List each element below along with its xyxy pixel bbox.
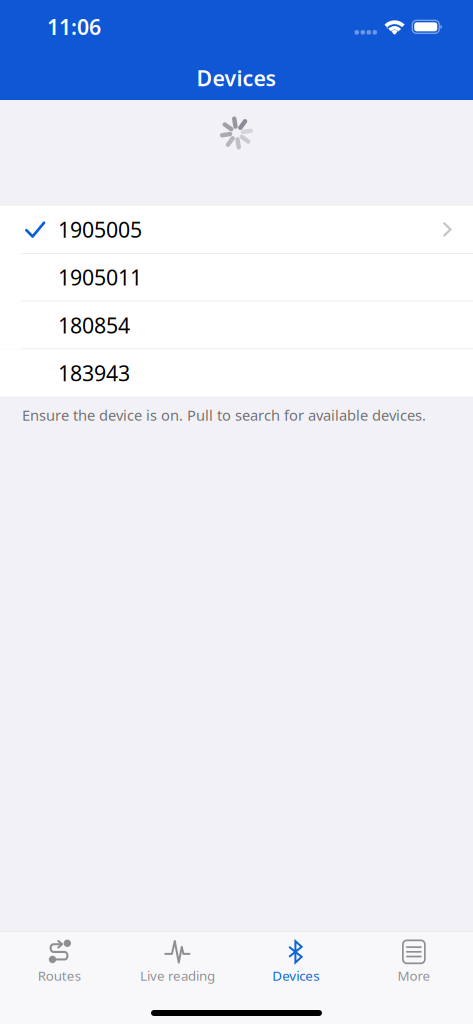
staticText: Ensure the device is on. Pull to search … <box>22 405 426 425</box>
button[interactable]: 180854 <box>0 302 473 349</box>
staticText: Routes <box>38 967 81 984</box>
button[interactable]: Live reading <box>118 933 236 986</box>
button[interactable]: Devices <box>236 933 355 986</box>
button[interactable]: Routes <box>0 933 118 986</box>
staticText: 183943 <box>58 359 130 387</box>
staticText: Devices <box>196 64 276 92</box>
staticText: Live reading <box>140 967 215 984</box>
staticText: 11:06 <box>47 13 101 41</box>
button[interactable]: 1905011 <box>0 254 473 301</box>
staticText: More <box>397 967 430 984</box>
staticText: Devices <box>272 967 319 984</box>
staticText: 1905011 <box>58 263 142 291</box>
button[interactable]: More <box>355 933 473 986</box>
staticText: 180854 <box>58 311 130 339</box>
staticText: 1905005 <box>58 215 142 244</box>
button[interactable]: 183943 <box>0 349 473 396</box>
button[interactable]: 1905005 <box>0 206 473 253</box>
